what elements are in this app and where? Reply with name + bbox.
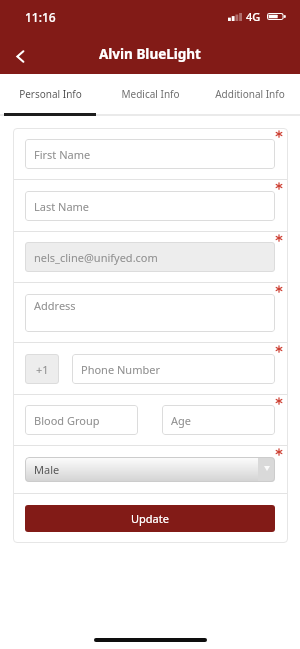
button[interactable]: Phone Number <box>72 354 275 384</box>
staticText: Blood Group <box>34 413 100 428</box>
button[interactable]: Back <box>0 36 40 76</box>
staticText: Personal Info <box>19 87 82 101</box>
button[interactable]: First Name <box>25 139 275 169</box>
staticText: Last Name <box>34 199 90 214</box>
staticText: Male <box>34 462 60 477</box>
staticText: Medical Info <box>121 87 180 101</box>
staticText: nels_cline@unifyed.com <box>34 250 158 265</box>
button[interactable]: Update <box>25 505 275 532</box>
button[interactable]: Male <box>25 457 275 482</box>
staticText: +1 <box>36 362 49 377</box>
staticText: Age <box>171 413 191 428</box>
button[interactable]: Last Name <box>25 191 275 221</box>
staticText: First Name <box>34 147 91 162</box>
staticText: 4G <box>246 9 261 24</box>
button[interactable]: Blood Group <box>25 405 138 435</box>
staticText: Address <box>34 298 76 313</box>
button[interactable]: Medical Info <box>100 74 200 114</box>
button[interactable]: Address <box>25 294 275 332</box>
button[interactable]: Personal Info <box>0 74 100 114</box>
staticText: Alvin BlueLight <box>99 45 201 63</box>
staticText: 11:16 <box>25 9 56 25</box>
staticText: Update <box>131 511 169 526</box>
button[interactable]: +1 <box>25 354 59 384</box>
staticText: Phone Number <box>81 362 160 377</box>
button[interactable]: Additional Info <box>200 74 300 114</box>
button[interactable]: nels_cline@unifyed.com <box>25 242 275 272</box>
staticText: Additional Info <box>215 87 285 101</box>
button[interactable]: Age <box>162 405 275 435</box>
